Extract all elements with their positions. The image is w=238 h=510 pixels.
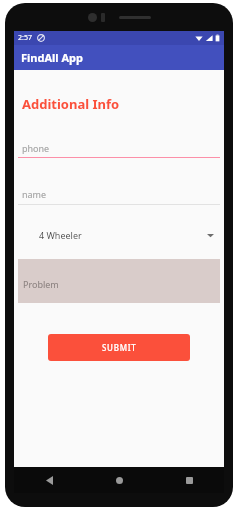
staticText: 2:57 [18,33,32,43]
button[interactable]: SUBMIT [48,334,190,361]
button[interactable]: Problem [18,259,220,303]
staticText: FindAll App [21,50,83,65]
staticText: Additional Info [22,95,120,113]
other: Open vehicle type dropdown [207,233,214,238]
staticText: name [22,188,47,200]
staticText: 4 Wheeler [39,229,82,241]
button[interactable]: Home [84,467,154,493]
staticText: SUBMIT [102,342,137,353]
staticText: Problem [23,278,59,290]
button[interactable]: name [18,188,220,205]
button[interactable]: 4 Wheeler [18,224,220,246]
staticText: phone [22,142,50,154]
button[interactable]: Back [14,467,84,493]
button[interactable]: Recent apps [154,467,224,493]
button[interactable]: phone [18,142,220,158]
